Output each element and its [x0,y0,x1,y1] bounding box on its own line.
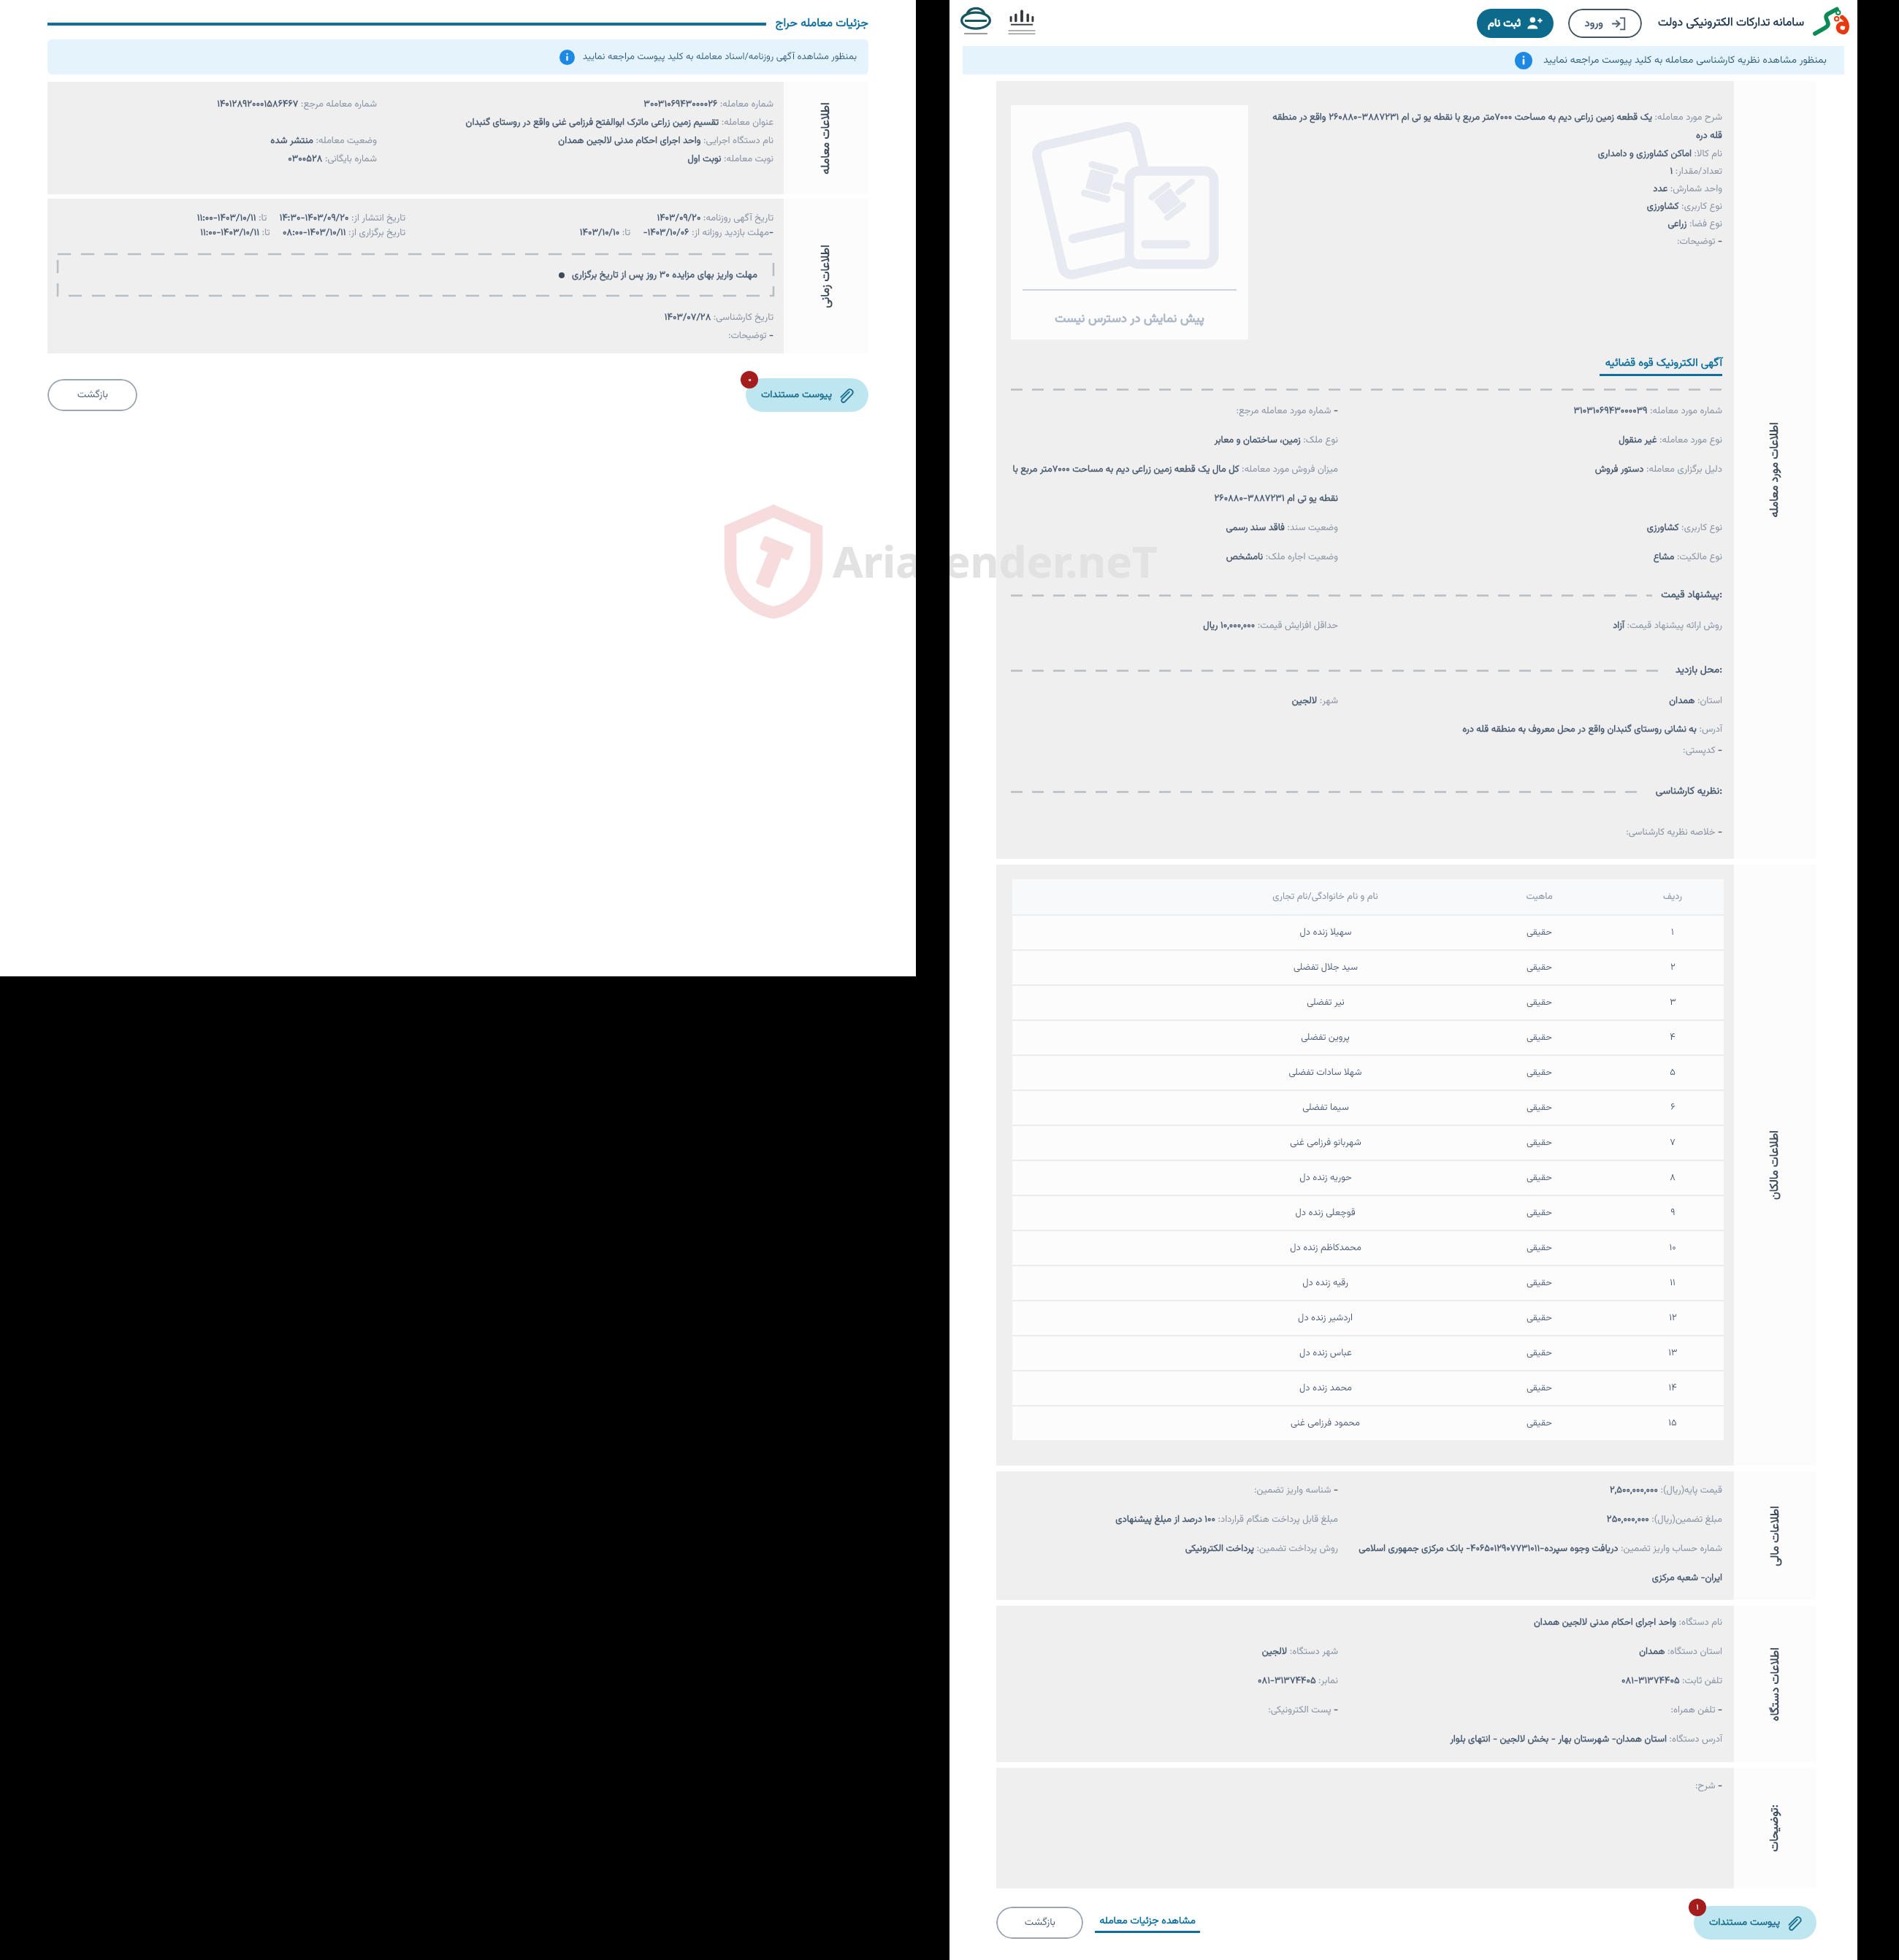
button[interactable]: محمود فرزامی غنی [1012,1406,1724,1440]
staticText: نیر تفضلی [1307,995,1345,1010]
staticText: نمابر: ‏۰۸۱-۳۱۳۷۴۴۰۵‏ [1011,1664,1338,1693]
staticText: مهلت بازدید روزانه از: ‏۱۴۰۳/۱۰/۰۶- تا: … [416,226,773,240]
staticText: جزئیات معامله حراج [775,15,868,33]
staticText: حقیقی [1527,1100,1552,1115]
button[interactable]: حوریه زنده دل [1012,1161,1724,1195]
staticText: تاریخ کارشناسی: ۱۴۰۳/۰۷/۲۸ [58,308,773,326]
button[interactable]: ثبت نام [1477,9,1554,38]
button[interactable]: بازگشت [996,1907,1083,1939]
staticText: ۱ [1671,925,1674,940]
staticText: حقیقی [1527,1206,1552,1220]
staticText: ۷ [1670,1136,1676,1150]
staticText: حقیقی [1527,925,1552,940]
staticText: سهیلا زنده دل [1299,925,1352,940]
staticText: مبلغ تضمین(ریال): ۲۵۰,۰۰۰,۰۰۰ [1349,1503,1722,1532]
staticText: محمود فرزامی غنی [1291,1416,1360,1431]
staticText: ۲ [1670,960,1676,975]
staticText: ۱۳ [1668,1346,1678,1360]
staticText: شناسه واریز تضمین: ‏ ‎- [1011,1474,1338,1503]
staticText: توضیحات: ‏ ‎- [58,326,773,345]
staticText: حقیقی [1527,1241,1552,1255]
staticText: شماره مورد معامله مرجع: ‏ ‎- [1011,394,1338,424]
staticText: تلفن ثابت: ‏۰۸۱-۳۱۳۷۴۴۰۵‏ [1349,1664,1722,1693]
staticText: وضعیت معامله: منتشر شده [58,131,377,150]
button[interactable]: اردشیر زنده دل [1012,1301,1724,1335]
staticText: بازگشت [1024,1915,1055,1931]
staticText: قیمت پایه(ریال): ۲,۵۰۰,۰۰۰,۰۰۰ [1349,1474,1722,1503]
staticText: ۳ [1670,995,1676,1010]
staticText: قوچعلی زنده دل [1295,1206,1356,1220]
button[interactable]: آگهی الکترونیک قوه قضائیه [1605,355,1722,372]
staticText: سید جلال تفضلی [1294,960,1358,975]
staticText: محمدکاظم زنده دل [1290,1241,1361,1255]
staticText: آدرس دستگاه: استان همدان- شهرستان بهار -… [1011,1723,1722,1752]
staticText: شهر: لالجین [1011,684,1338,713]
button[interactable]: پروین تفضلی [1012,1021,1724,1054]
staticText: حقیقی [1527,995,1552,1010]
staticText: ۱۰ [1669,1241,1676,1255]
staticText: ۱۱ [1670,1276,1676,1290]
button[interactable]: پیوست مستندات [746,378,868,412]
staticText: نوع مالکیت: مشاع [1349,540,1722,570]
button[interactable]: نیر تفضلی [1012,986,1724,1019]
staticText: وضعیت اجاره ملک: نامشخص [1011,540,1338,570]
staticText: توضیحات: [1766,1768,1784,1888]
staticText: تلفن همراه: ‏ ‎- [1349,1693,1722,1723]
staticText: اطلاعات زمانی [817,199,835,354]
staticText: کدپستی: ‏ ‎- [1011,741,1722,759]
button[interactable]: بمنظور مشاهده نظریه کارشناسی معامله به ک… [963,46,1844,74]
staticText: آدرس: به نشانی روستای گنبدان واقع در محل… [1011,713,1722,741]
staticText: ۱۵ [1668,1416,1677,1431]
staticText: روش پرداخت تضمین: پرداخت الکترونیکی [1011,1532,1338,1561]
staticText: حقیقی [1527,1171,1552,1185]
button[interactable]: سیما تفضلی [1012,1091,1724,1125]
staticText: ۵ [1670,1065,1676,1080]
staticText: ثبت نام [1488,15,1521,32]
staticText: میزان فروش مورد معامله: کل مال یک قطعه ز… [1011,453,1338,511]
button[interactable]: مشاهده جزئیات معامله [1095,1913,1200,1933]
staticText: ۱۲ [1669,1311,1677,1325]
button[interactable]: بازگشت [47,379,137,411]
button[interactable]: ورود [1568,9,1642,38]
staticText: اطلاعات مورد معامله [1766,81,1784,859]
staticText: شرح مورد معامله: یک قطعه زمین زراعی دیم … [1264,108,1722,145]
button[interactable]: محمد زنده دل [1012,1371,1724,1405]
staticText: خلاصه نظریه کارشناسی: ‏ ‎- [1011,816,1722,845]
button[interactable]: رقیه زنده دل [1012,1266,1724,1300]
staticText: تاریخ انتشار از: ۱۴۰۳/۰۹/۲۰-۱۴:۳۰ تا: ۱۴… [58,211,405,226]
staticText: نام کالا: اماکن کشاورزی و دامداری [1264,145,1722,162]
staticText: نام و نام خانوادگی/نام تجاری [1272,889,1378,904]
button[interactable]: محمدکاظم زنده دل [1012,1231,1724,1265]
button[interactable]: قوچعلی زنده دل [1012,1196,1724,1230]
button[interactable]: سید جلال تفضلی [1012,951,1724,984]
button[interactable]: عباس زنده دل [1012,1336,1724,1370]
staticText: حداقل افزایش قیمت: ۱۰,۰۰۰,۰۰۰ ریال [1011,609,1338,638]
button[interactable]: پیوست مستندات [1694,1906,1816,1940]
staticText: وضعیت سند: فاقد سند رسمی [1011,511,1338,540]
staticText: شهربانو فرزامی غنی [1290,1136,1361,1150]
button[interactable]: شهلا سادات تفضلی [1012,1056,1724,1090]
staticText: AriaTender.neT [833,531,1158,591]
staticText: رقیه زنده دل [1302,1276,1348,1290]
staticText: نام دستگاه: واحد اجرای احکام مدنی لالجین… [1011,1606,1722,1635]
other: Ministry of Industry emblem [1006,8,1037,39]
button[interactable]: سهیلا زنده دل [1012,916,1724,949]
staticText: اطلاعات معامله [817,82,835,195]
staticText: واحد شمارش: عدد [1264,180,1722,197]
staticText: تاریخ آگهی روزنامه: ۱۴۰۳/۰۹/۲۰ [416,211,773,226]
staticText: سیما تفضلی [1302,1100,1349,1115]
staticText: حقیقی [1527,1416,1552,1431]
staticText: نوبت معامله: نوبت اول [387,150,773,168]
staticText: ۹ [1670,1206,1676,1220]
staticText: شماره مورد معامله: ۳۱۰۳۱۰۶۹۴۳۰۰۰۰۳۹ [1349,394,1722,424]
staticText: حقیقی [1527,1030,1552,1045]
button[interactable]: بمنظور مشاهده آگهی روزنامه/اسناد معامله … [47,39,868,74]
staticText: استان دستگاه: همدان [1349,1635,1722,1664]
staticText: ۰ [748,374,752,386]
other: SETAD logo [1813,5,1849,42]
staticText: شماره حساب واریز تضمین: دریافت وجوه سپرد… [1349,1532,1722,1590]
staticText: محمد زنده دل [1299,1381,1352,1396]
button[interactable]: شهربانو فرزامی غنی [1012,1126,1724,1160]
staticText: توضیحات: ‏ ‎- [1264,232,1722,250]
staticText: بازگشت [77,387,108,403]
